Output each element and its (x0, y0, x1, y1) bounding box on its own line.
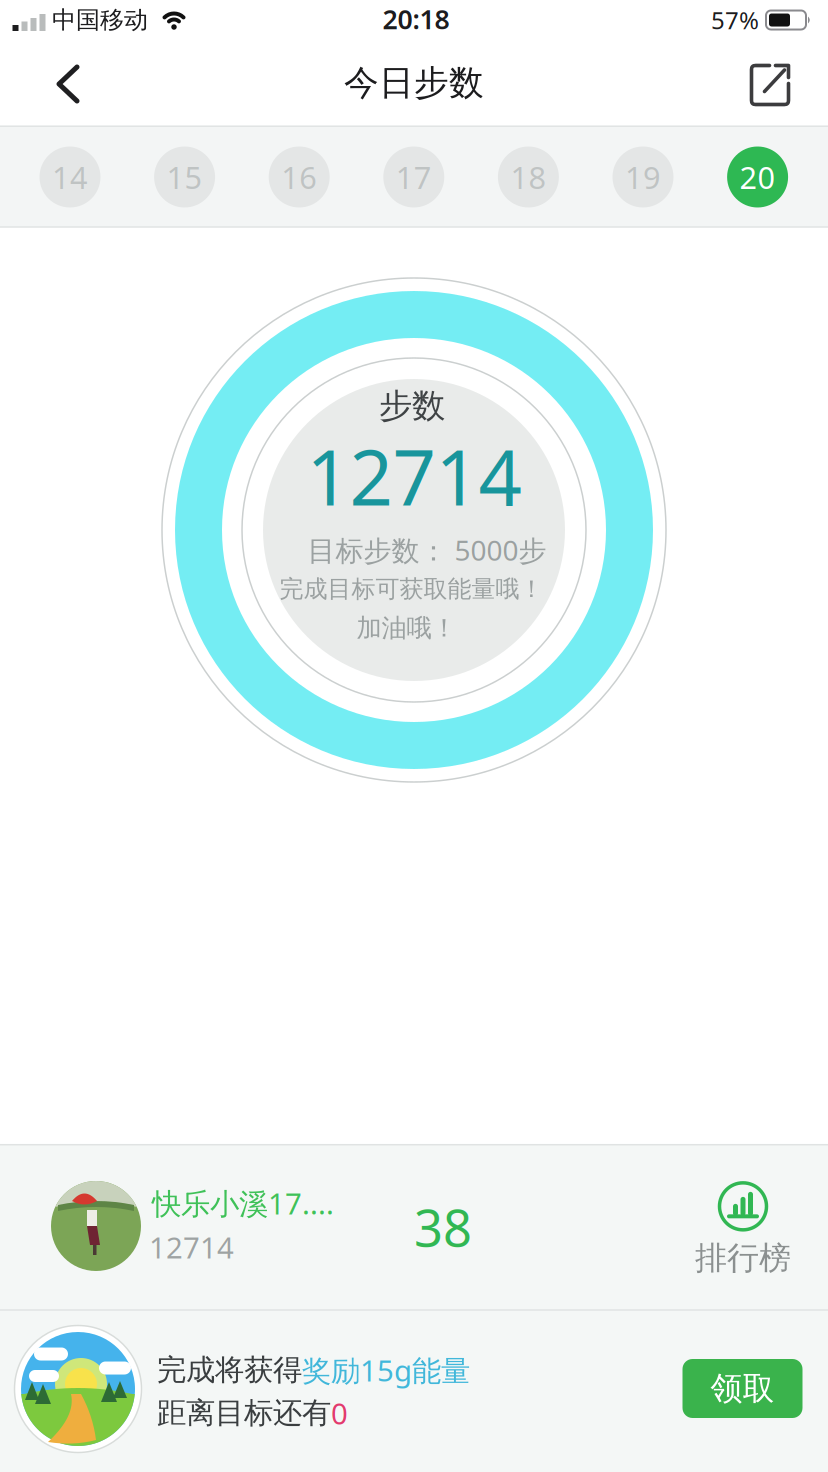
staticText: 12714 (149, 1227, 234, 1266)
staticText: 57% (711, 4, 759, 36)
staticText: 38 (414, 1193, 472, 1261)
staticText: 今日步数 (344, 62, 484, 104)
staticText: 完成目标可获取能量哦！ (279, 574, 543, 604)
staticText: 15 (167, 157, 203, 197)
button[interactable]: Back (46, 60, 90, 108)
button[interactable]: 17 (369, 132, 459, 222)
staticText: 距离目标还有 (157, 1395, 331, 1431)
button[interactable]: 排行榜 (678, 1165, 808, 1295)
staticText: 步数 (379, 385, 445, 426)
button[interactable]: Share (749, 63, 794, 108)
button[interactable]: 16 (254, 132, 344, 222)
staticText: 20 (740, 157, 776, 197)
staticText: 排行榜 (695, 1238, 791, 1278)
staticText: 完成将获得 (157, 1352, 302, 1388)
staticText: 加油哦！ (356, 612, 456, 643)
staticText: 0 (331, 1393, 348, 1432)
button[interactable]: 20 (713, 132, 803, 222)
staticText: 20:18 (382, 1, 449, 37)
staticText: 目标步数： 5000步 (307, 531, 546, 569)
button[interactable]: 15 (140, 132, 230, 222)
staticText: 中国移动 (52, 5, 148, 35)
staticText: 奖励15g能量 (302, 1350, 470, 1389)
staticText: 快乐小溪17.... (152, 1183, 334, 1222)
staticText: 14 (52, 157, 88, 197)
staticText: 17 (396, 157, 432, 197)
button[interactable]: 领取 (682, 1359, 802, 1418)
button[interactable]: 18 (483, 132, 573, 222)
staticText: 18 (510, 157, 546, 197)
staticText: 12714 (306, 425, 521, 526)
button[interactable]: 19 (598, 132, 688, 222)
staticText: 19 (625, 157, 661, 197)
staticText: 16 (281, 157, 317, 197)
button[interactable]: 14 (25, 132, 115, 222)
staticText: 领取 (710, 1369, 774, 1408)
